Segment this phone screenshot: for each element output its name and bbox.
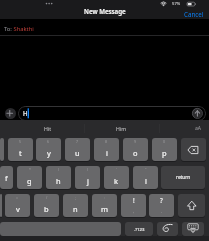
staticText: 5 [19, 139, 22, 144]
staticText: o [133, 148, 138, 158]
button[interactable] [181, 138, 206, 161]
button[interactable] [157, 222, 178, 236]
staticText: n [73, 204, 78, 214]
button[interactable]: 5 [8, 138, 33, 161]
button[interactable]: Cancel [0, 10, 204, 18]
button[interactable]: return [161, 166, 205, 189]
button[interactable]: 6 [36, 138, 61, 161]
staticText: t [19, 148, 22, 158]
staticText: To: [4, 25, 12, 33]
staticText: Him [116, 125, 127, 132]
staticText: 8 [105, 139, 108, 144]
button[interactable]: = [5, 194, 30, 217]
staticText: . [161, 208, 163, 215]
staticText: ' [116, 167, 117, 172]
staticText: 7 [76, 139, 79, 144]
button[interactable]: ; [63, 194, 88, 217]
button[interactable]: .?123 [125, 222, 153, 236]
staticText: ) [87, 167, 89, 172]
button[interactable] [178, 194, 205, 217]
staticText: New Message [84, 7, 126, 15]
staticText: Hi [23, 109, 30, 117]
staticText: g [27, 176, 32, 186]
button[interactable] [5, 108, 16, 119]
staticText: ( [58, 167, 60, 172]
button[interactable]: ) [75, 166, 100, 189]
staticText: 6 [47, 139, 50, 144]
button[interactable]: 9 [123, 138, 148, 161]
staticText: p [162, 148, 167, 158]
button[interactable]: " [133, 166, 158, 189]
button[interactable]: Hit [28, 122, 68, 135]
staticText: Shakthi [12, 25, 34, 33]
button[interactable] [0, 194, 2, 217]
staticText: 9 [134, 139, 137, 144]
button[interactable]: 8 [94, 138, 119, 161]
staticText: ; [75, 195, 76, 200]
staticText: h [56, 176, 61, 186]
button[interactable]: ? [149, 194, 174, 217]
staticText: l [145, 176, 147, 186]
staticText: * [29, 167, 31, 172]
button[interactable] [192, 108, 202, 118]
button[interactable]: Him [101, 122, 141, 135]
button[interactable] [18, 106, 206, 121]
staticText: u [75, 148, 80, 158]
staticText: .?123 [134, 226, 145, 232]
button[interactable] [0, 138, 4, 161]
button[interactable]: * [17, 166, 42, 189]
staticText: / [46, 195, 48, 200]
staticText: Hit [44, 125, 52, 132]
staticText: v [16, 204, 20, 214]
button[interactable] [182, 222, 204, 236]
staticText: y [47, 148, 51, 158]
button[interactable]: : [92, 194, 117, 217]
staticText: m [101, 204, 109, 214]
staticText: return [176, 174, 191, 181]
button[interactable]: f [0, 166, 13, 189]
button[interactable]: / [34, 194, 59, 217]
staticText: 57% [172, 1, 181, 7]
staticText: f [5, 173, 8, 183]
staticText: i [106, 148, 108, 158]
staticText: " [145, 167, 147, 172]
staticText: = [16, 195, 19, 200]
button[interactable]: ! [121, 194, 146, 217]
staticText: : [104, 195, 105, 200]
staticText: b [44, 204, 49, 214]
staticText: aA [195, 125, 202, 132]
button[interactable]: aA [190, 122, 206, 135]
staticText: Cancel [184, 10, 204, 18]
staticText: j [87, 176, 89, 186]
staticText: ? [160, 196, 163, 204]
staticText: , [133, 208, 135, 215]
staticText: k [114, 176, 119, 186]
button[interactable]: ( [46, 166, 71, 189]
staticText: ! [133, 196, 135, 204]
button[interactable]: 0 [152, 138, 177, 161]
staticText: 0 [163, 139, 166, 144]
button[interactable]: To: [4, 25, 34, 33]
button[interactable]: 7 [65, 138, 90, 161]
button[interactable]: ' [104, 166, 129, 189]
